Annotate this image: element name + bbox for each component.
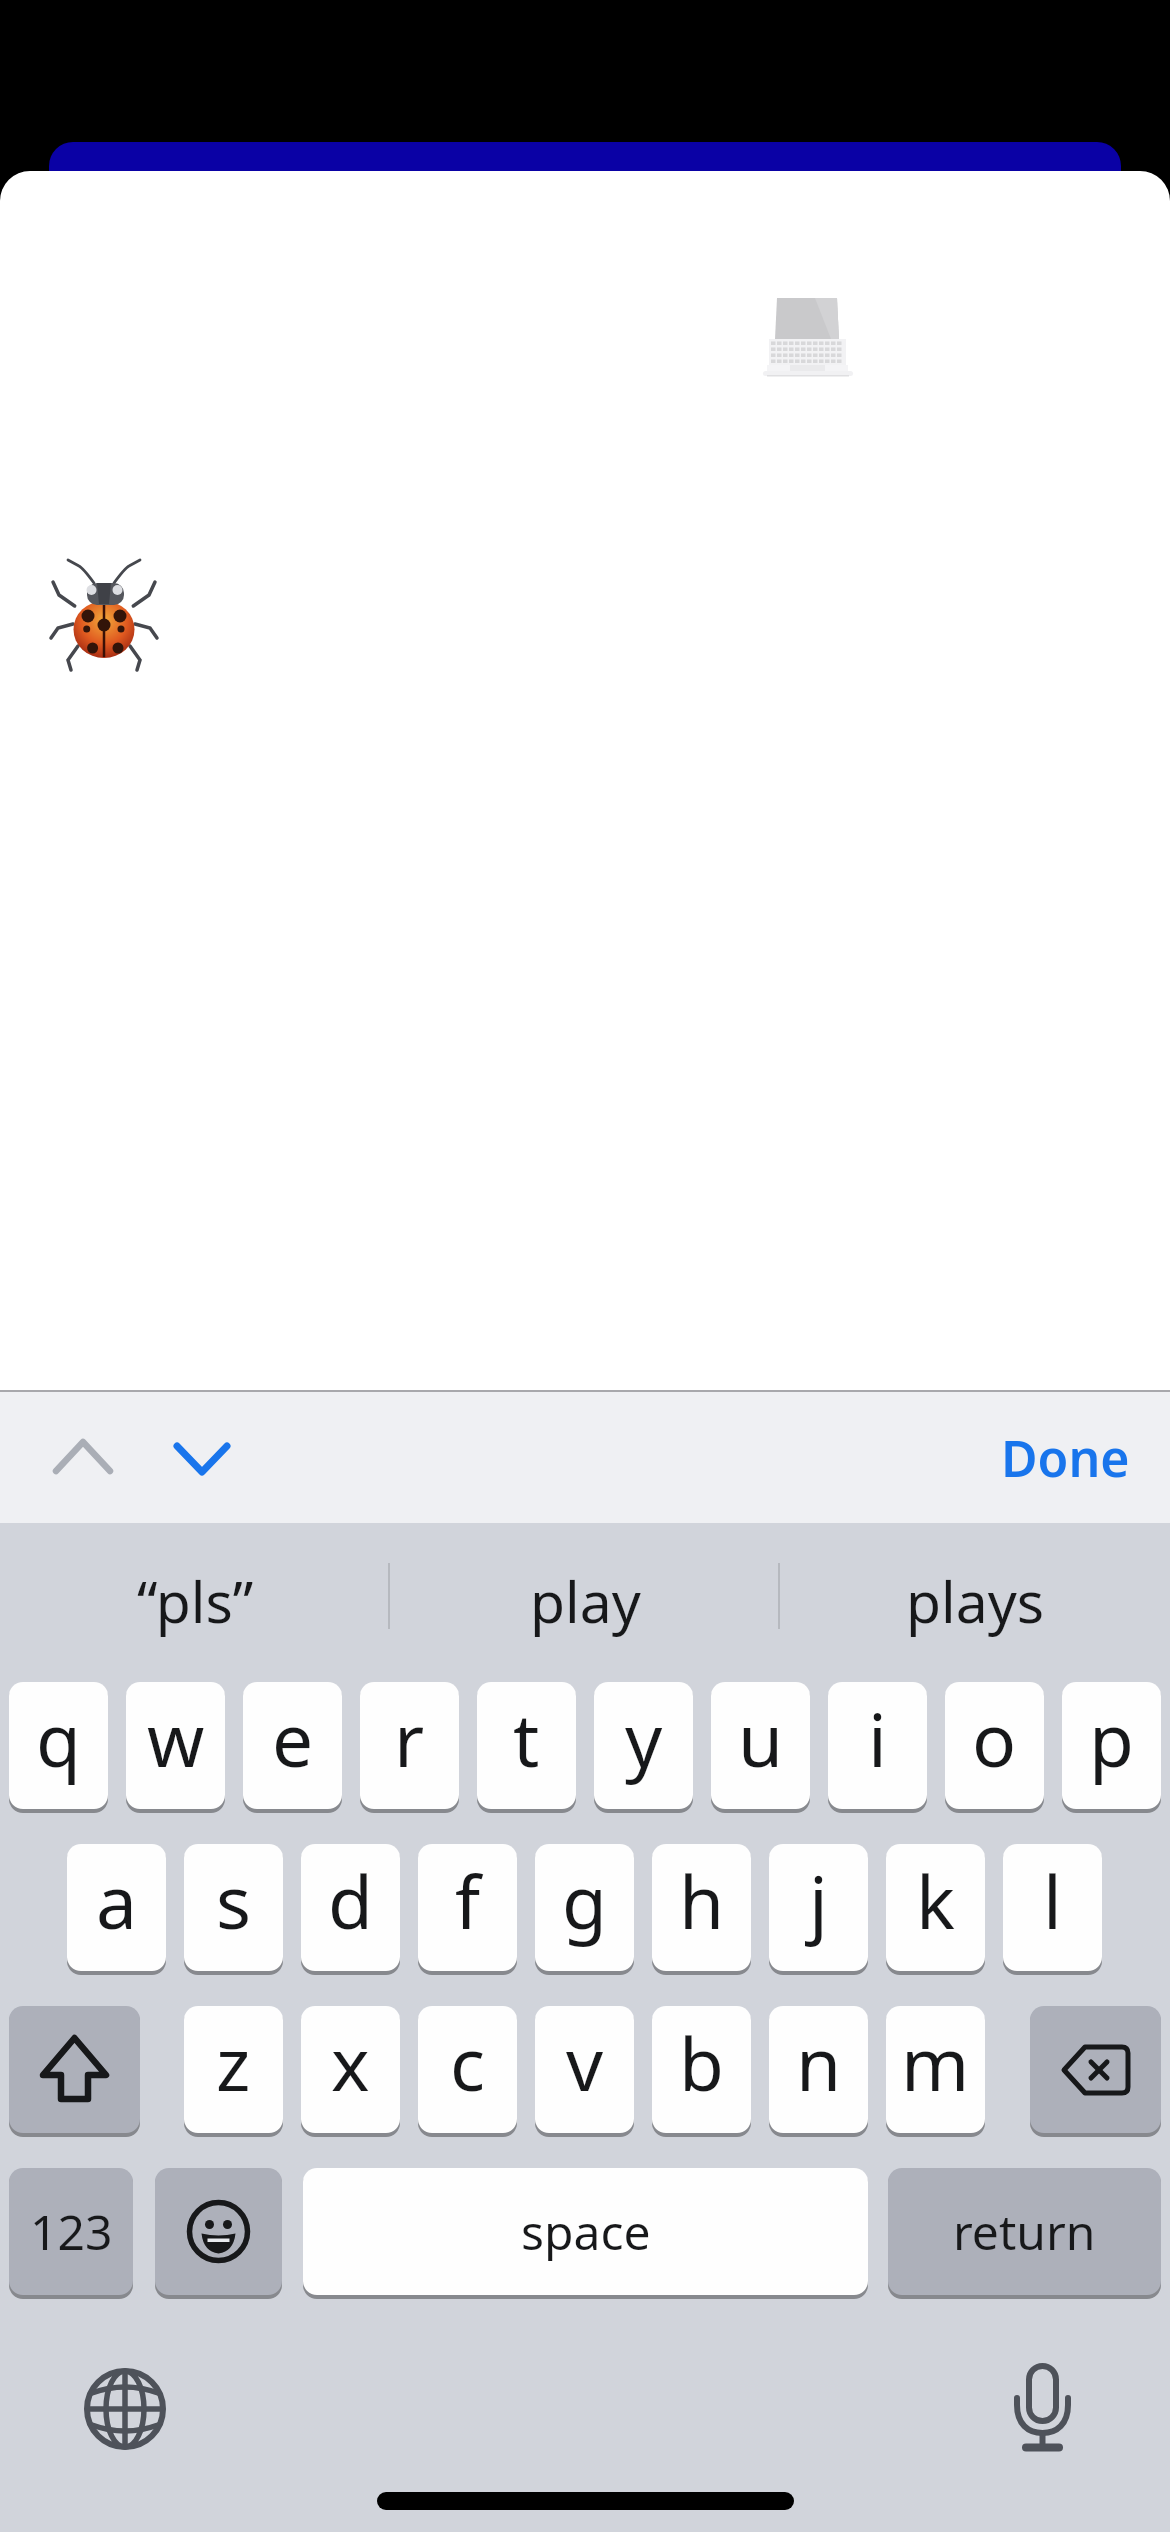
button[interactable]: i <box>828 1682 927 1809</box>
button[interactable]: v <box>535 2006 634 2133</box>
staticText: d <box>328 1851 373 1950</box>
button[interactable]: b <box>652 2006 751 2133</box>
button[interactable] <box>1030 2006 1161 2133</box>
button[interactable]: t <box>477 1682 576 1809</box>
button[interactable]: s <box>184 1844 283 1971</box>
staticText: r <box>394 1689 425 1788</box>
staticText: space <box>521 2199 651 2264</box>
staticText: “pls” <box>137 1562 254 1640</box>
staticText: l <box>1043 1851 1062 1950</box>
staticText: u <box>738 1689 784 1788</box>
button[interactable]: g <box>535 1844 634 1971</box>
staticText: c <box>450 2013 486 2112</box>
staticText: p <box>1089 1689 1134 1788</box>
button[interactable]: l <box>1003 1844 1102 1971</box>
staticText: return <box>953 2199 1096 2264</box>
staticText: o <box>972 1689 1017 1788</box>
staticText: s <box>216 1851 251 1950</box>
staticText: x <box>331 2013 370 2112</box>
staticText: e <box>272 1689 314 1788</box>
button[interactable]: play <box>435 1545 735 1657</box>
button[interactable]: y <box>594 1682 693 1809</box>
button[interactable]: w <box>126 1682 225 1809</box>
button[interactable]: m <box>886 2006 985 2133</box>
button[interactable] <box>155 2168 282 2295</box>
staticText: m <box>901 2013 970 2112</box>
button[interactable]: q <box>9 1682 108 1809</box>
staticText: Done <box>1001 1424 1130 1492</box>
button[interactable]: r <box>360 1682 459 1809</box>
staticText: n <box>796 2013 842 2112</box>
staticText: f <box>455 1851 481 1950</box>
staticText: j <box>809 1851 828 1950</box>
button[interactable]: z <box>184 2006 283 2133</box>
staticText: plays <box>906 1562 1045 1640</box>
button[interactable]: f <box>418 1844 517 1971</box>
staticText: a <box>96 1851 137 1950</box>
button[interactable]: x <box>301 2006 400 2133</box>
staticText: i <box>868 1689 887 1788</box>
button[interactable]: “pls” <box>45 1545 345 1657</box>
button[interactable]: k <box>886 1844 985 1971</box>
button[interactable] <box>80 2364 170 2454</box>
staticText: z <box>216 2013 251 2112</box>
button[interactable]: e <box>243 1682 342 1809</box>
button[interactable]: n <box>769 2006 868 2133</box>
button[interactable]: o <box>945 1682 1044 1809</box>
button[interactable] <box>9 2006 140 2133</box>
button[interactable] <box>1013 2360 1075 2455</box>
staticText: w <box>147 1689 205 1788</box>
button[interactable]: p <box>1062 1682 1161 1809</box>
staticText: q <box>36 1689 81 1788</box>
button[interactable]: h <box>652 1844 751 1971</box>
button[interactable]: space <box>303 2168 868 2295</box>
staticText: h <box>679 1851 725 1950</box>
button[interactable] <box>166 1420 238 1490</box>
staticText: 123 <box>30 2199 113 2264</box>
staticText: g <box>562 1851 607 1950</box>
button[interactable]: return <box>888 2168 1161 2295</box>
button[interactable]: 123 <box>9 2168 133 2295</box>
button[interactable]: j <box>769 1844 868 1971</box>
staticText: y <box>625 1689 663 1788</box>
button[interactable]: d <box>301 1844 400 1971</box>
button[interactable]: plays <box>825 1545 1125 1657</box>
button[interactable] <box>43 1420 123 1490</box>
staticText: play <box>530 1562 641 1640</box>
staticText: t <box>513 1689 540 1788</box>
button[interactable]: c <box>418 2006 517 2133</box>
button[interactable]: Done <box>975 1392 1155 1523</box>
staticText: v <box>566 2013 604 2112</box>
button[interactable]: u <box>711 1682 810 1809</box>
staticText: k <box>916 1851 955 1950</box>
button[interactable]: a <box>67 1844 166 1971</box>
staticText: b <box>679 2013 724 2112</box>
